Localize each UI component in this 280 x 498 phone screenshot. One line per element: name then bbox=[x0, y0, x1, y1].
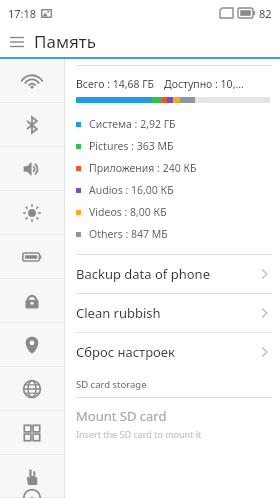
staticText: Videos : 8,00 КБ bbox=[89, 205, 167, 219]
staticText: Audios : 16,00 КБ bbox=[89, 183, 174, 197]
staticText: Система : 2,92 ГБ bbox=[89, 117, 176, 131]
staticText: Pictures : 363 МБ bbox=[89, 139, 174, 153]
button[interactable]: Система : 2,92 ГБ bbox=[65, 113, 280, 135]
button[interactable]: Clean rubbish bbox=[65, 294, 280, 332]
button[interactable]: Сброс настроек bbox=[65, 333, 280, 371]
staticText: Память bbox=[34, 30, 96, 53]
button[interactable]: Apps bbox=[0, 411, 64, 455]
button[interactable]: Location bbox=[0, 323, 64, 367]
button[interactable]: Videos : 8,00 КБ bbox=[65, 201, 280, 223]
staticText: Всего : 14,68 ГБ bbox=[76, 77, 155, 91]
staticText: Insert the SD card to mount it bbox=[76, 428, 202, 440]
button[interactable]: Приложения : 240 КБ bbox=[65, 157, 280, 179]
button[interactable]: Gestures bbox=[0, 455, 64, 498]
staticText: Backup data of phone bbox=[76, 265, 210, 283]
staticText: 82 bbox=[259, 6, 272, 21]
button[interactable]: Brightness bbox=[0, 191, 64, 235]
button[interactable]: Sound bbox=[0, 147, 64, 191]
button[interactable]: Backup data of phone bbox=[65, 255, 280, 293]
button[interactable]: Security bbox=[0, 279, 64, 323]
staticText: Сброс настроек bbox=[76, 343, 175, 361]
button[interactable]: Bluetooth bbox=[0, 103, 64, 147]
button[interactable]: Wi-Fi bbox=[0, 59, 64, 103]
staticText: Доступно : 10,... bbox=[164, 77, 244, 91]
staticText: Clean rubbish bbox=[76, 304, 161, 322]
button[interactable]: Mount SD card bbox=[65, 407, 280, 425]
button[interactable]: Others : 847 МБ bbox=[65, 223, 280, 245]
button[interactable]: Menu bbox=[0, 26, 34, 57]
button[interactable]: Battery bbox=[0, 235, 64, 279]
button[interactable]: Network bbox=[0, 367, 64, 411]
staticText: Mount SD card bbox=[76, 407, 167, 425]
button[interactable]: Audios : 16,00 КБ bbox=[65, 179, 280, 201]
staticText: 17:18 bbox=[8, 6, 37, 21]
staticText: SD card storage bbox=[76, 378, 147, 391]
button[interactable]: Pictures : 363 МБ bbox=[65, 135, 280, 157]
staticText: Others : 847 МБ bbox=[89, 227, 168, 241]
staticText: Приложения : 240 КБ bbox=[89, 161, 197, 175]
